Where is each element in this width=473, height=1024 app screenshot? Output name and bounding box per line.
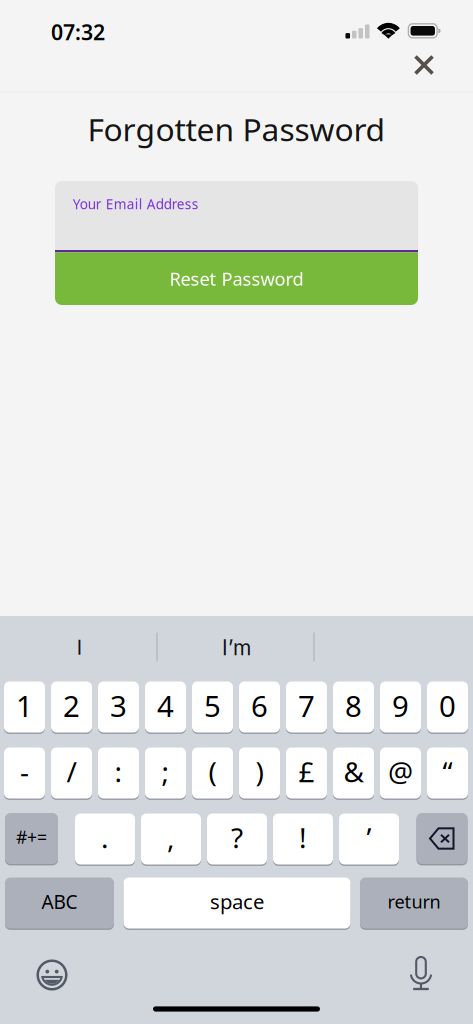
- staticText: 1: [16, 685, 33, 725]
- staticText: 6: [251, 685, 268, 725]
- staticText: 2: [63, 685, 80, 725]
- button[interactable]: Emoji: [28, 951, 76, 999]
- staticText: ,: [167, 818, 175, 856]
- staticText: 0: [439, 685, 456, 725]
- button[interactable]: -: [4, 746, 45, 800]
- staticText: #+=: [16, 825, 47, 849]
- button[interactable]: “: [427, 746, 468, 800]
- staticText: ;: [161, 752, 169, 790]
- staticText: I: [77, 635, 82, 660]
- button[interactable]: /: [51, 746, 92, 800]
- staticText: “: [442, 752, 452, 790]
- button[interactable]: space: [123, 876, 350, 930]
- button[interactable]: £: [286, 746, 327, 800]
- button[interactable]: 9: [380, 680, 421, 734]
- button[interactable]: Dictate: [397, 947, 445, 995]
- staticText: Forgotten Password: [87, 107, 385, 151]
- button[interactable]: ?: [207, 812, 267, 866]
- staticText: I’m: [222, 635, 251, 660]
- staticText: .: [101, 818, 109, 856]
- staticText: !: [299, 818, 307, 856]
- button[interactable]: ): [239, 746, 280, 800]
- button[interactable]: :: [98, 746, 139, 800]
- button[interactable]: 7: [286, 680, 327, 734]
- staticText: (: [208, 752, 216, 790]
- button[interactable]: 1: [4, 680, 45, 734]
- button[interactable]: ’: [339, 812, 399, 866]
- staticText: 8: [345, 685, 362, 725]
- button[interactable]: .: [75, 812, 135, 866]
- button[interactable]: 0: [427, 680, 468, 734]
- staticText: :: [114, 752, 122, 790]
- staticText: ’: [366, 818, 371, 856]
- staticText: 5: [204, 685, 221, 725]
- button[interactable]: ,: [141, 812, 201, 866]
- staticText: -: [20, 752, 29, 790]
- staticText: Reset Password: [169, 266, 303, 291]
- button[interactable]: Reset Password: [55, 252, 418, 305]
- staticText: Your Email Address: [73, 195, 199, 213]
- staticText: 9: [392, 685, 409, 725]
- button[interactable]: @: [380, 746, 421, 800]
- button[interactable]: 4: [145, 680, 186, 734]
- button[interactable]: 3: [98, 680, 139, 734]
- staticText: £: [298, 752, 314, 790]
- button[interactable]: 5: [192, 680, 233, 734]
- staticText: 4: [157, 685, 174, 725]
- button[interactable]: 6: [239, 680, 280, 734]
- button[interactable]: Close: [400, 43, 448, 87]
- staticText: ): [255, 752, 263, 790]
- button[interactable]: 2: [51, 680, 92, 734]
- button[interactable]: ABC: [5, 876, 114, 930]
- button[interactable]: (: [192, 746, 233, 800]
- button[interactable]: #+=: [5, 811, 58, 865]
- staticText: @: [388, 752, 413, 790]
- button[interactable]: !: [273, 812, 333, 866]
- staticText: 7: [298, 685, 315, 725]
- button[interactable]: &: [333, 746, 374, 800]
- button[interactable]: ;: [145, 746, 186, 800]
- staticText: ?: [231, 818, 243, 856]
- button[interactable]: return: [360, 876, 468, 930]
- button[interactable]: 8: [333, 680, 374, 734]
- staticText: 3: [110, 685, 127, 725]
- staticText: 07:32: [51, 18, 105, 46]
- staticText: return: [387, 889, 440, 914]
- staticText: &: [343, 752, 363, 790]
- staticText: /: [66, 752, 76, 790]
- button[interactable]: Delete: [416, 811, 467, 865]
- staticText: space: [210, 888, 264, 915]
- staticText: ABC: [41, 888, 77, 914]
